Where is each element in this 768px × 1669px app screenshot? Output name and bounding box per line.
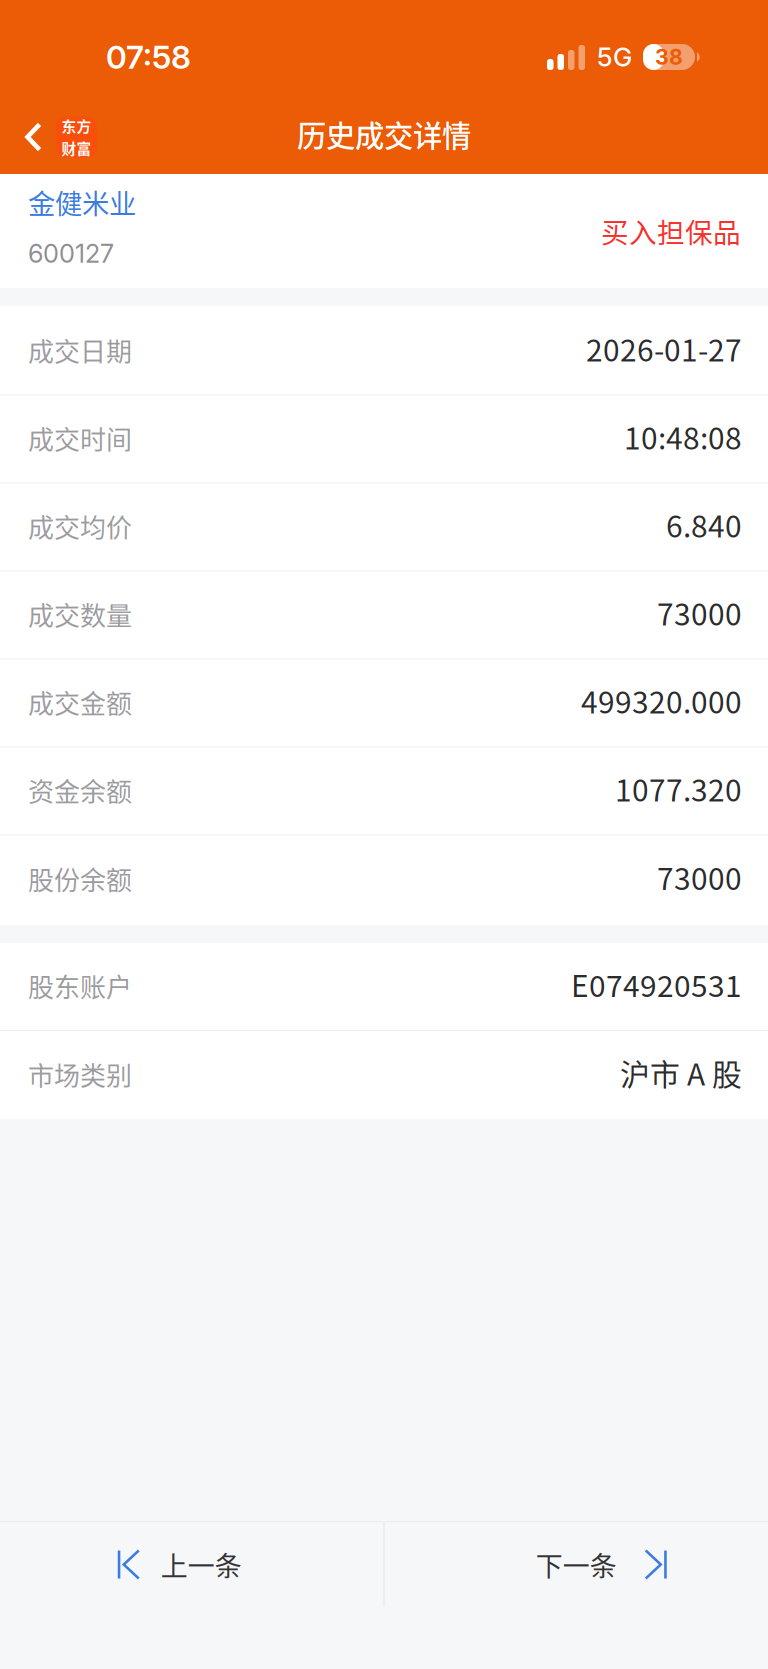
staticText: 成交金额 [28, 683, 132, 721]
button[interactable]: 返回 东方财富 [0, 102, 111, 166]
staticText: 2026-01-27 [586, 327, 742, 370]
staticText: 沪市 A 股 [620, 1051, 742, 1094]
staticText: 上一条 [161, 1545, 242, 1584]
staticText: 下一条 [536, 1545, 617, 1584]
staticText: 资金余额 [28, 771, 132, 809]
staticText: 1077.320 [615, 767, 742, 810]
staticText: 历史成交详情 [297, 113, 471, 155]
staticText: 市场类别 [28, 1055, 132, 1093]
staticText: 财富 [61, 137, 91, 159]
staticText: 38 [655, 44, 683, 70]
staticText: 金健米业 [28, 182, 136, 222]
staticText: 10:48:08 [624, 415, 742, 458]
staticText: 499320.000 [581, 679, 742, 722]
staticText: 股份余额 [28, 860, 132, 897]
staticText: 成交日期 [28, 331, 132, 369]
staticText: 07:58 [106, 38, 191, 76]
staticText: 73000 [657, 591, 742, 634]
staticText: 东方 [61, 115, 91, 136]
staticText: E074920531 [571, 962, 742, 1006]
staticText: 600127 [28, 238, 114, 269]
staticText: 6.840 [666, 503, 742, 546]
button[interactable]: 下一条 [384, 1522, 768, 1607]
staticText: 5G [597, 41, 632, 73]
staticText: 成交数量 [28, 595, 132, 633]
staticText: 股东账户 [28, 967, 132, 1004]
staticText: 成交均价 [28, 507, 132, 545]
staticText: 买入担保品 [601, 211, 741, 251]
staticText: 73000 [657, 855, 742, 899]
button[interactable]: 上一条 [0, 1522, 383, 1607]
staticText: 成交时间 [28, 419, 132, 457]
